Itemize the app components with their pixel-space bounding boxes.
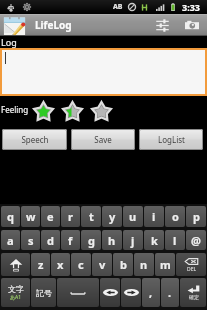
button[interactable]: Save <box>71 129 135 150</box>
staticText: u <box>129 209 137 224</box>
staticText: x <box>57 257 64 272</box>
button[interactable]: Cursor right <box>121 278 141 307</box>
staticText: z <box>38 257 44 272</box>
button[interactable]: v <box>92 253 112 276</box>
button[interactable]: Cursor left <box>100 278 120 307</box>
staticText: DEL <box>187 266 197 273</box>
button[interactable]: p <box>186 206 206 227</box>
staticText: p <box>193 209 200 224</box>
button[interactable]: 記号 <box>31 278 56 307</box>
staticText: 文字 <box>8 284 24 294</box>
button[interactable]: g <box>81 230 101 250</box>
button[interactable]: n <box>134 253 154 276</box>
button[interactable]: m <box>155 253 175 276</box>
staticText: v <box>99 257 106 272</box>
button[interactable]: Rating 1 star <box>32 102 61 122</box>
staticText: l <box>173 233 177 248</box>
button[interactable]: s <box>21 230 40 250</box>
staticText: j <box>131 233 135 248</box>
button[interactable]: 文字 <box>1 278 30 307</box>
staticText: f <box>68 233 73 248</box>
staticText: s <box>28 233 34 248</box>
staticText: i <box>152 209 156 224</box>
button[interactable]: LogList <box>139 129 203 150</box>
staticText: Log <box>1 36 17 48</box>
staticText: Save <box>94 134 112 145</box>
staticText: w <box>26 209 36 224</box>
button[interactable]: z <box>31 253 50 276</box>
staticText: o <box>172 209 179 224</box>
button[interactable]: Space <box>57 278 99 307</box>
button[interactable]: q <box>1 206 20 227</box>
button[interactable]: Camera <box>177 14 207 36</box>
staticText: n <box>140 257 148 272</box>
staticText: あA1 <box>10 294 22 301</box>
staticText: 3:33 <box>182 1 200 13</box>
button[interactable]: i <box>144 206 164 227</box>
staticText: @ <box>191 233 201 248</box>
button[interactable]: , <box>142 278 160 307</box>
button[interactable]: . <box>161 278 179 307</box>
button[interactable]: u <box>123 206 143 227</box>
staticText: c <box>78 257 84 272</box>
staticText: AB <box>113 2 123 12</box>
button[interactable]: Shift <box>1 253 30 276</box>
button[interactable]: f <box>61 230 80 250</box>
staticText: k <box>151 233 158 248</box>
button[interactable]: h <box>102 230 122 250</box>
button[interactable]: k <box>144 230 164 250</box>
staticText: r <box>68 209 73 224</box>
button[interactable]: c <box>71 253 91 276</box>
button[interactable]: j <box>123 230 143 250</box>
staticText: 記号 <box>36 288 52 298</box>
staticText: a <box>7 233 14 248</box>
button[interactable]: Rating 3 stars <box>90 102 119 122</box>
button[interactable]: @ <box>186 230 206 250</box>
staticText: h <box>108 233 116 248</box>
staticText: Speech <box>21 134 49 145</box>
button[interactable]: r <box>61 206 80 227</box>
button[interactable]: o <box>165 206 185 227</box>
staticText: 確定 <box>189 294 199 300</box>
button[interactable]: e <box>41 206 60 227</box>
button[interactable]: Rating 2 stars <box>61 102 90 122</box>
staticText: LogList <box>158 134 185 145</box>
staticText: d <box>47 233 54 248</box>
button[interactable]: Delete <box>176 253 206 276</box>
staticText: e <box>47 209 54 224</box>
button[interactable]: b <box>113 253 133 276</box>
button[interactable]: t <box>81 206 101 227</box>
staticText: q <box>7 209 14 224</box>
staticText: . <box>168 285 172 300</box>
button[interactable] <box>0 48 207 96</box>
button[interactable]: a <box>1 230 20 250</box>
button[interactable]: y <box>102 206 122 227</box>
staticText: Feeling <box>1 104 29 115</box>
button[interactable]: Settings <box>147 14 177 36</box>
button[interactable]: d <box>41 230 60 250</box>
staticText: LifeLog <box>35 18 72 32</box>
staticText: , <box>149 285 153 300</box>
staticText: y <box>109 209 116 224</box>
staticText: b <box>120 257 127 272</box>
button[interactable]: x <box>51 253 70 276</box>
button[interactable]: l <box>165 230 185 250</box>
staticText: t <box>89 209 94 224</box>
button[interactable]: Speech <box>2 129 67 150</box>
staticText: m <box>160 257 171 272</box>
button[interactable]: App icon <box>2 14 26 36</box>
button[interactable]: Enter <box>180 278 206 307</box>
staticText: g <box>88 233 95 248</box>
button[interactable]: w <box>21 206 40 227</box>
